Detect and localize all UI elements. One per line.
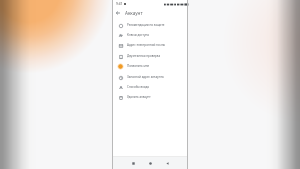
button[interactable]: Запасной адрес аккаунта: [112, 72, 188, 82]
button[interactable]: Способы входа: [112, 82, 188, 92]
button[interactable]: Главный экран: [146, 159, 154, 167]
button[interactable]: Двухэтапная проверка: [112, 51, 188, 61]
staticText: 9:41: [116, 2, 123, 6]
button[interactable]: Адрес электронной почты: [112, 40, 188, 50]
staticText: Аккаунт: [125, 10, 143, 16]
staticText: Адрес электронной почты: [127, 43, 166, 47]
button[interactable]: Рекомендации по защите: [112, 20, 188, 30]
staticText: Двухэтапная проверка: [127, 54, 161, 58]
staticText: Способы входа: [127, 85, 149, 89]
staticText: Запасной адрес аккаунта: [127, 75, 164, 79]
button[interactable]: Назад: [114, 9, 122, 17]
staticText: Позвонить мне: [127, 64, 150, 68]
button[interactable]: Недавние: [129, 159, 137, 167]
button[interactable]: Удалить аккаунт: [112, 92, 188, 102]
staticText: Удалить аккаунт: [127, 95, 151, 99]
button[interactable]: Позвонить мне: [112, 61, 188, 71]
staticText: Рекомендации по защите: [127, 23, 165, 27]
button[interactable]: Ключи доступа: [112, 30, 188, 40]
button[interactable]: Назад: [163, 159, 171, 167]
staticText: Ключи доступа: [127, 33, 149, 37]
